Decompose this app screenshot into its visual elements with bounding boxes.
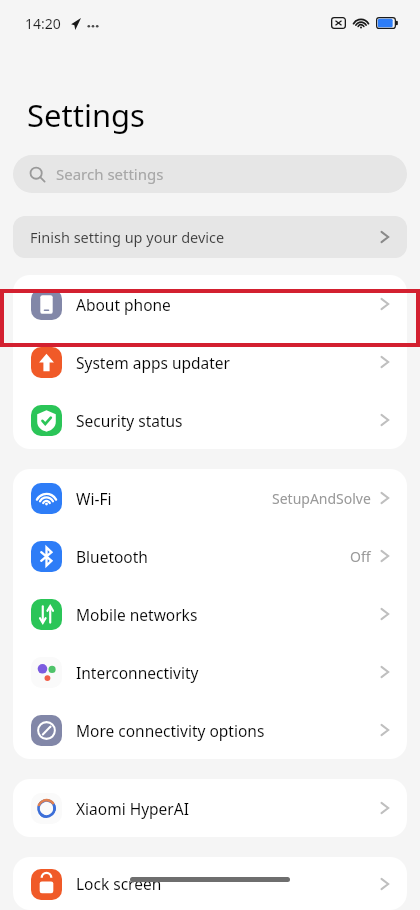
- staticText: Xiaomi HyperAI: [76, 798, 189, 819]
- staticText: Lock screen: [76, 873, 162, 894]
- button[interactable]: Mobile networks: [13, 585, 407, 643]
- staticText: More connectivity options: [76, 720, 265, 741]
- button[interactable]: Xiaomi HyperAI: [13, 779, 407, 837]
- button[interactable]: System apps updater: [13, 333, 407, 391]
- button[interactable]: Interconnectivity: [13, 643, 407, 701]
- staticText: Interconnectivity: [76, 662, 199, 683]
- button[interactable]: More connectivity options: [13, 701, 407, 759]
- staticText: Security status: [76, 410, 183, 431]
- button[interactable]: Finish setting up your device: [13, 216, 407, 258]
- staticText: System apps updater: [76, 352, 230, 373]
- staticText: SetupAndSolve: [272, 489, 371, 508]
- staticText: About phone: [76, 294, 171, 315]
- staticText: Settings: [27, 94, 145, 136]
- staticText: Off: [350, 547, 371, 566]
- button[interactable]: About phone: [13, 275, 407, 333]
- staticText: Mobile networks: [76, 604, 198, 625]
- button[interactable]: Wi-Fi: [13, 469, 407, 527]
- staticText: Bluetooth: [76, 546, 148, 567]
- button[interactable]: Search settings: [13, 155, 407, 193]
- staticText: 14:20: [25, 14, 61, 33]
- staticText: Finish setting up your device: [30, 227, 225, 247]
- staticText: Wi-Fi: [76, 488, 112, 509]
- button[interactable]: Lock screen: [13, 857, 407, 910]
- staticText: Search settings: [56, 164, 164, 184]
- button[interactable]: Security status: [13, 391, 407, 449]
- button[interactable]: Bluetooth: [13, 527, 407, 585]
